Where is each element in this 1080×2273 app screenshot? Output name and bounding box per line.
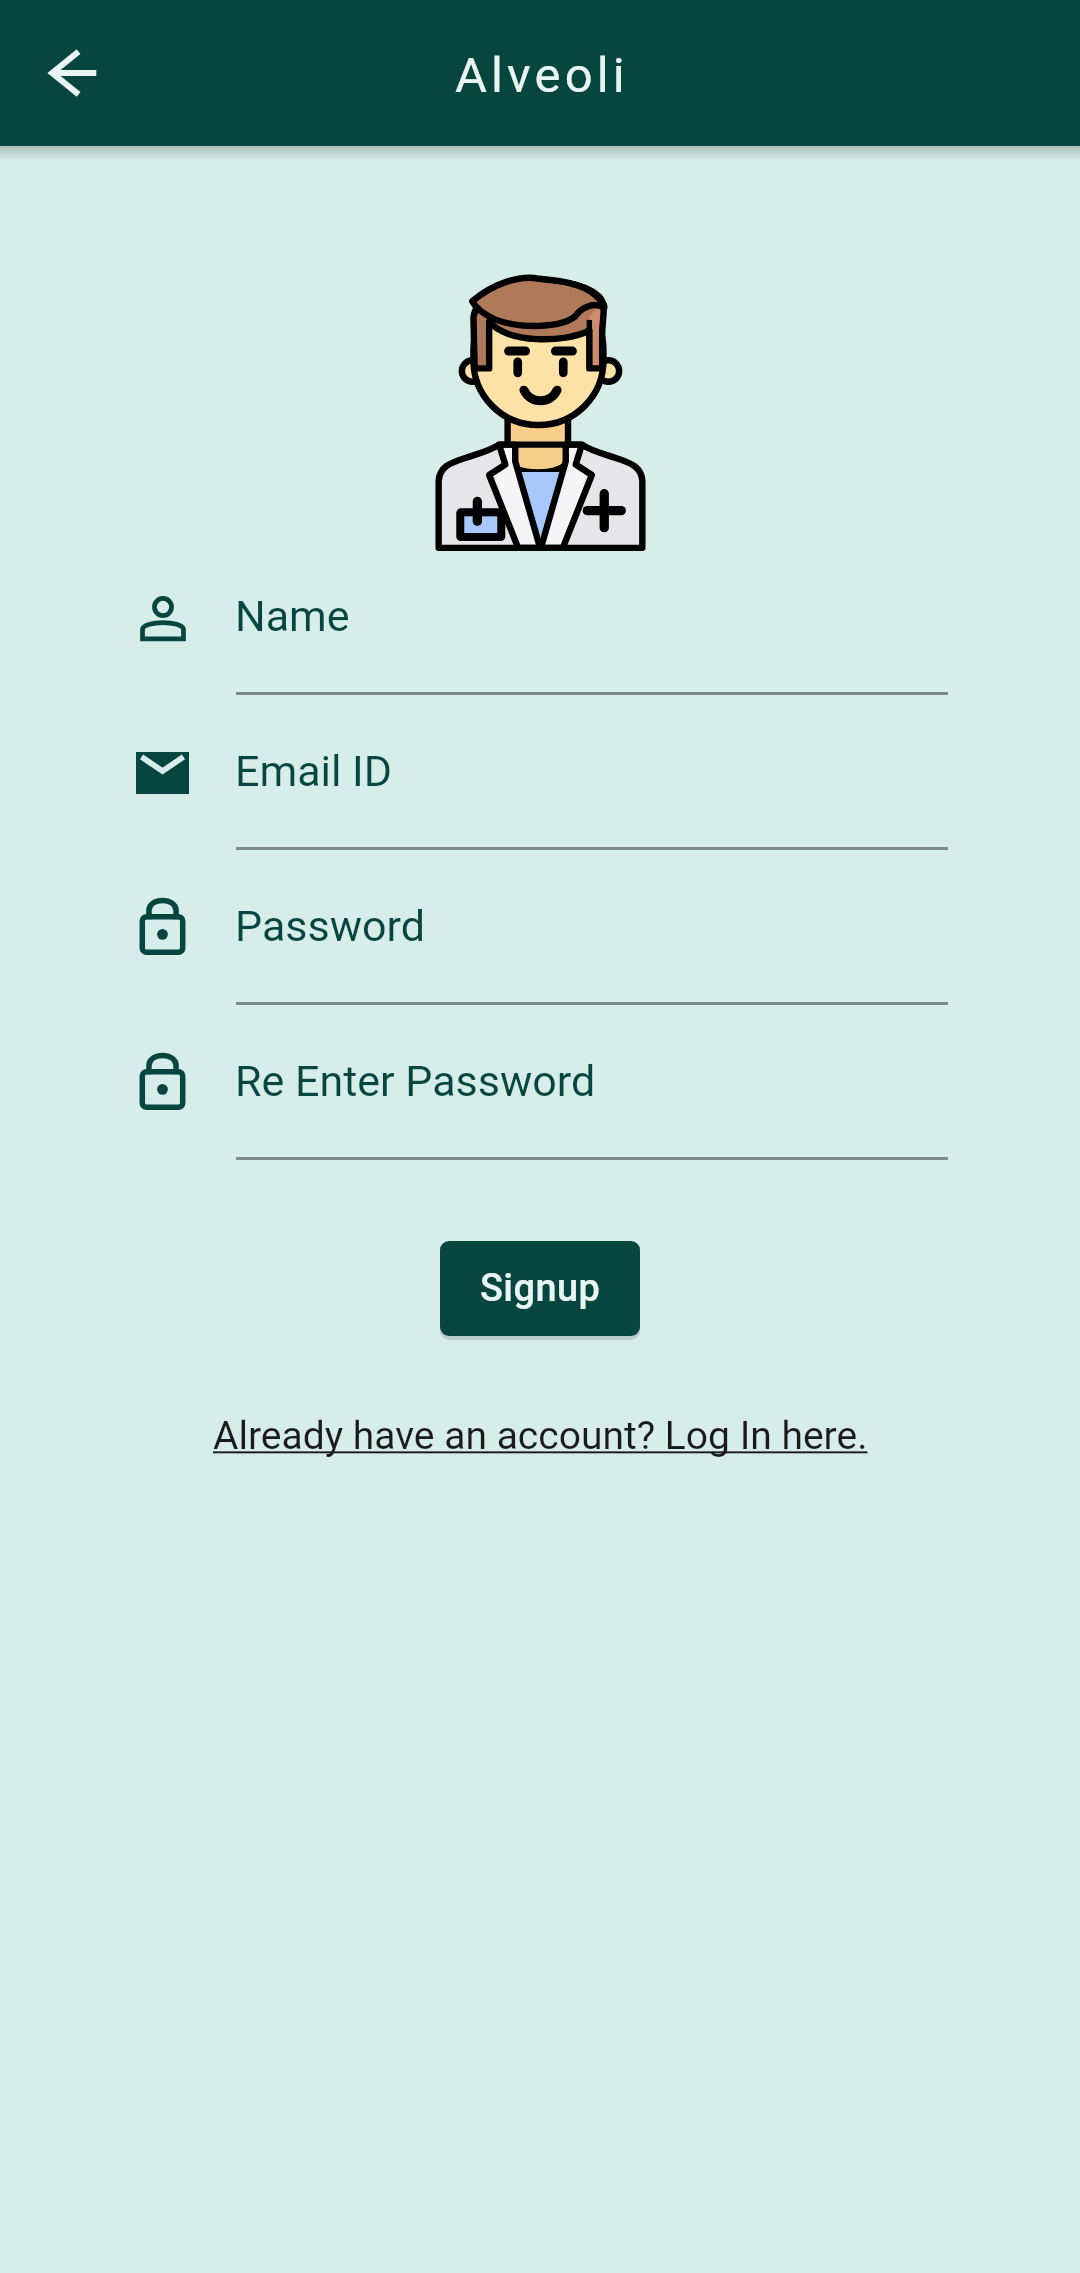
button[interactable]: Back (28, 25, 120, 121)
staticText: Signup (480, 1266, 601, 1311)
staticText: Alveoli (455, 47, 629, 104)
staticText: Password (235, 901, 425, 951)
button[interactable]: Already have an account? Log In here. (209, 1411, 872, 1461)
staticText: Already have an account? Log In here. (213, 1413, 868, 1459)
staticText: Name (235, 591, 350, 641)
button[interactable]: Signup (440, 1241, 640, 1336)
staticText: Re Enter Password (235, 1056, 596, 1106)
staticText: Email ID (235, 746, 393, 796)
